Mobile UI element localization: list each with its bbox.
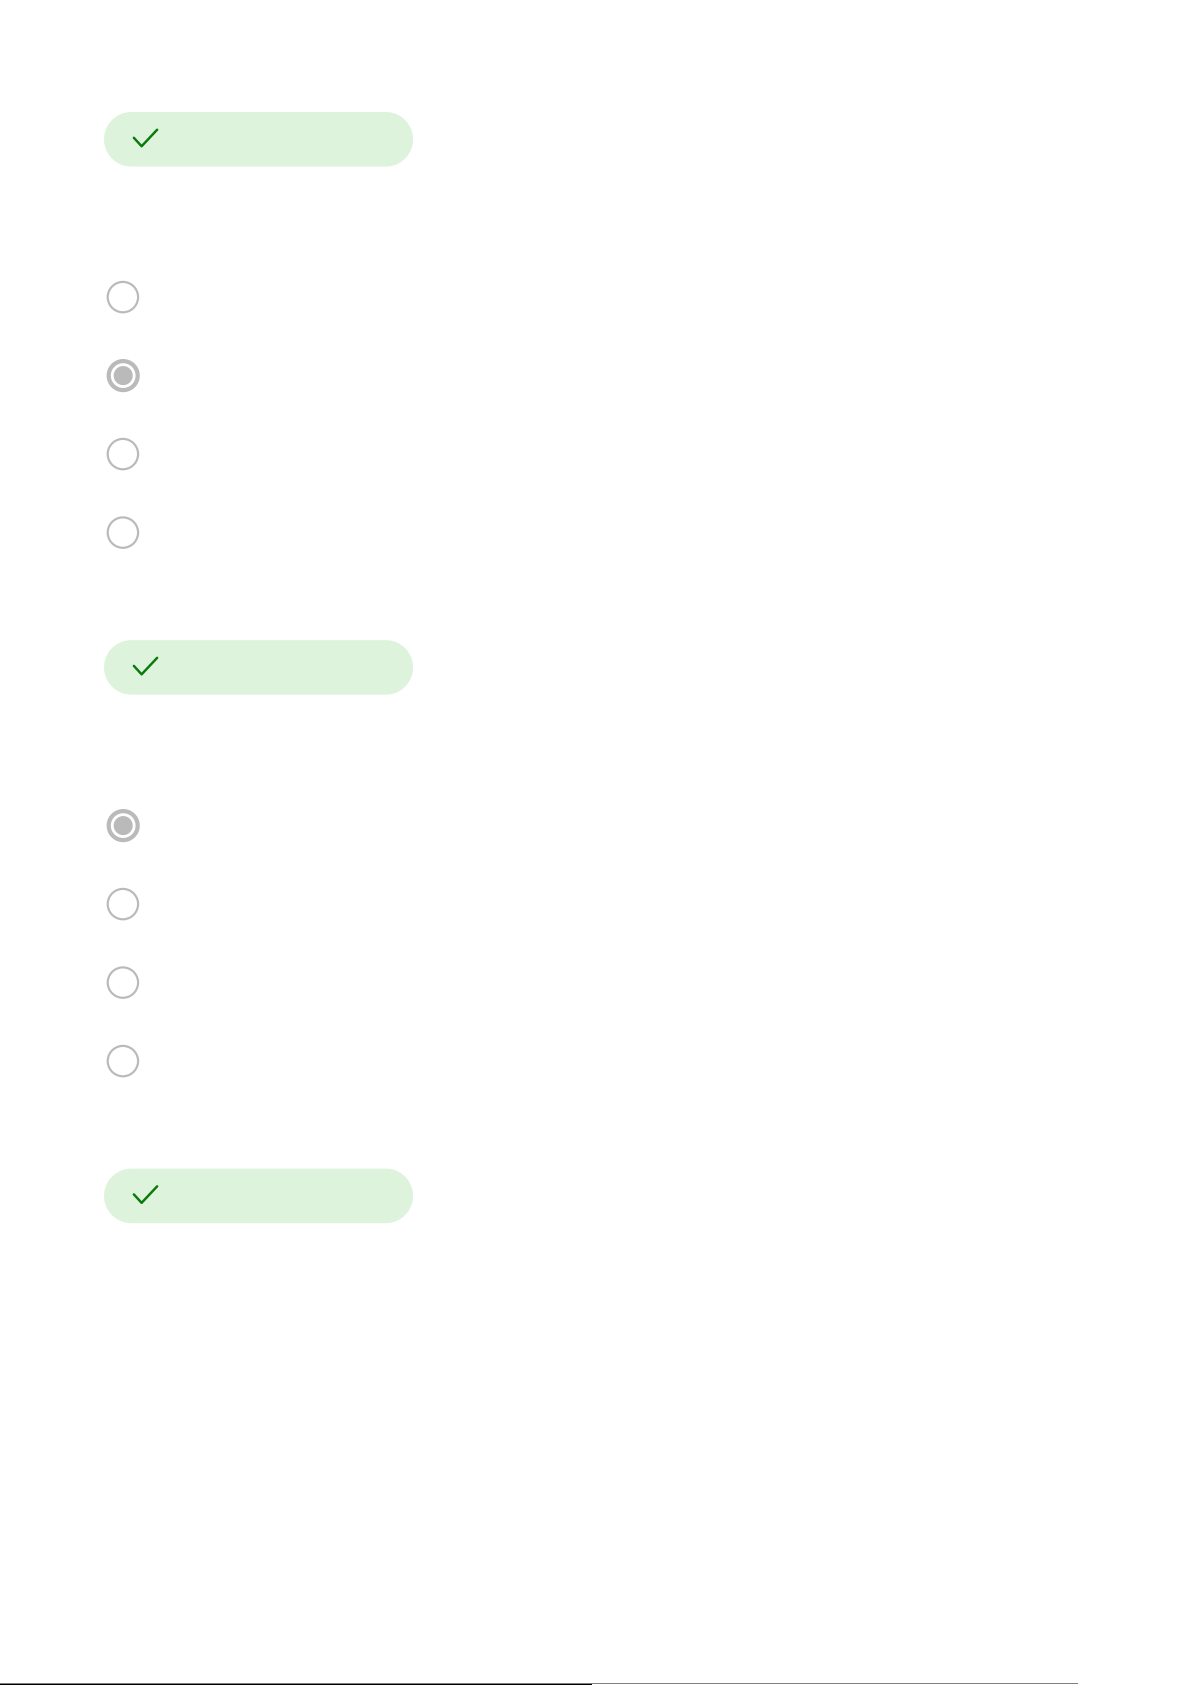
button[interactable]: Answer option <box>104 881 1087 927</box>
button[interactable]: Answer option <box>104 1038 1087 1084</box>
button[interactable]: Selected answer <box>104 803 1087 849</box>
button[interactable]: Selected answer <box>104 353 1087 399</box>
button[interactable]: Answered <box>104 1169 413 1223</box>
button[interactable]: Answer option <box>104 960 1087 1006</box>
button[interactable]: Answer option <box>104 510 1087 556</box>
button[interactable]: Answered <box>104 112 413 167</box>
button[interactable]: Answer option <box>104 431 1087 477</box>
button[interactable]: Answered <box>104 640 413 695</box>
button[interactable]: Answer option <box>104 274 1087 320</box>
